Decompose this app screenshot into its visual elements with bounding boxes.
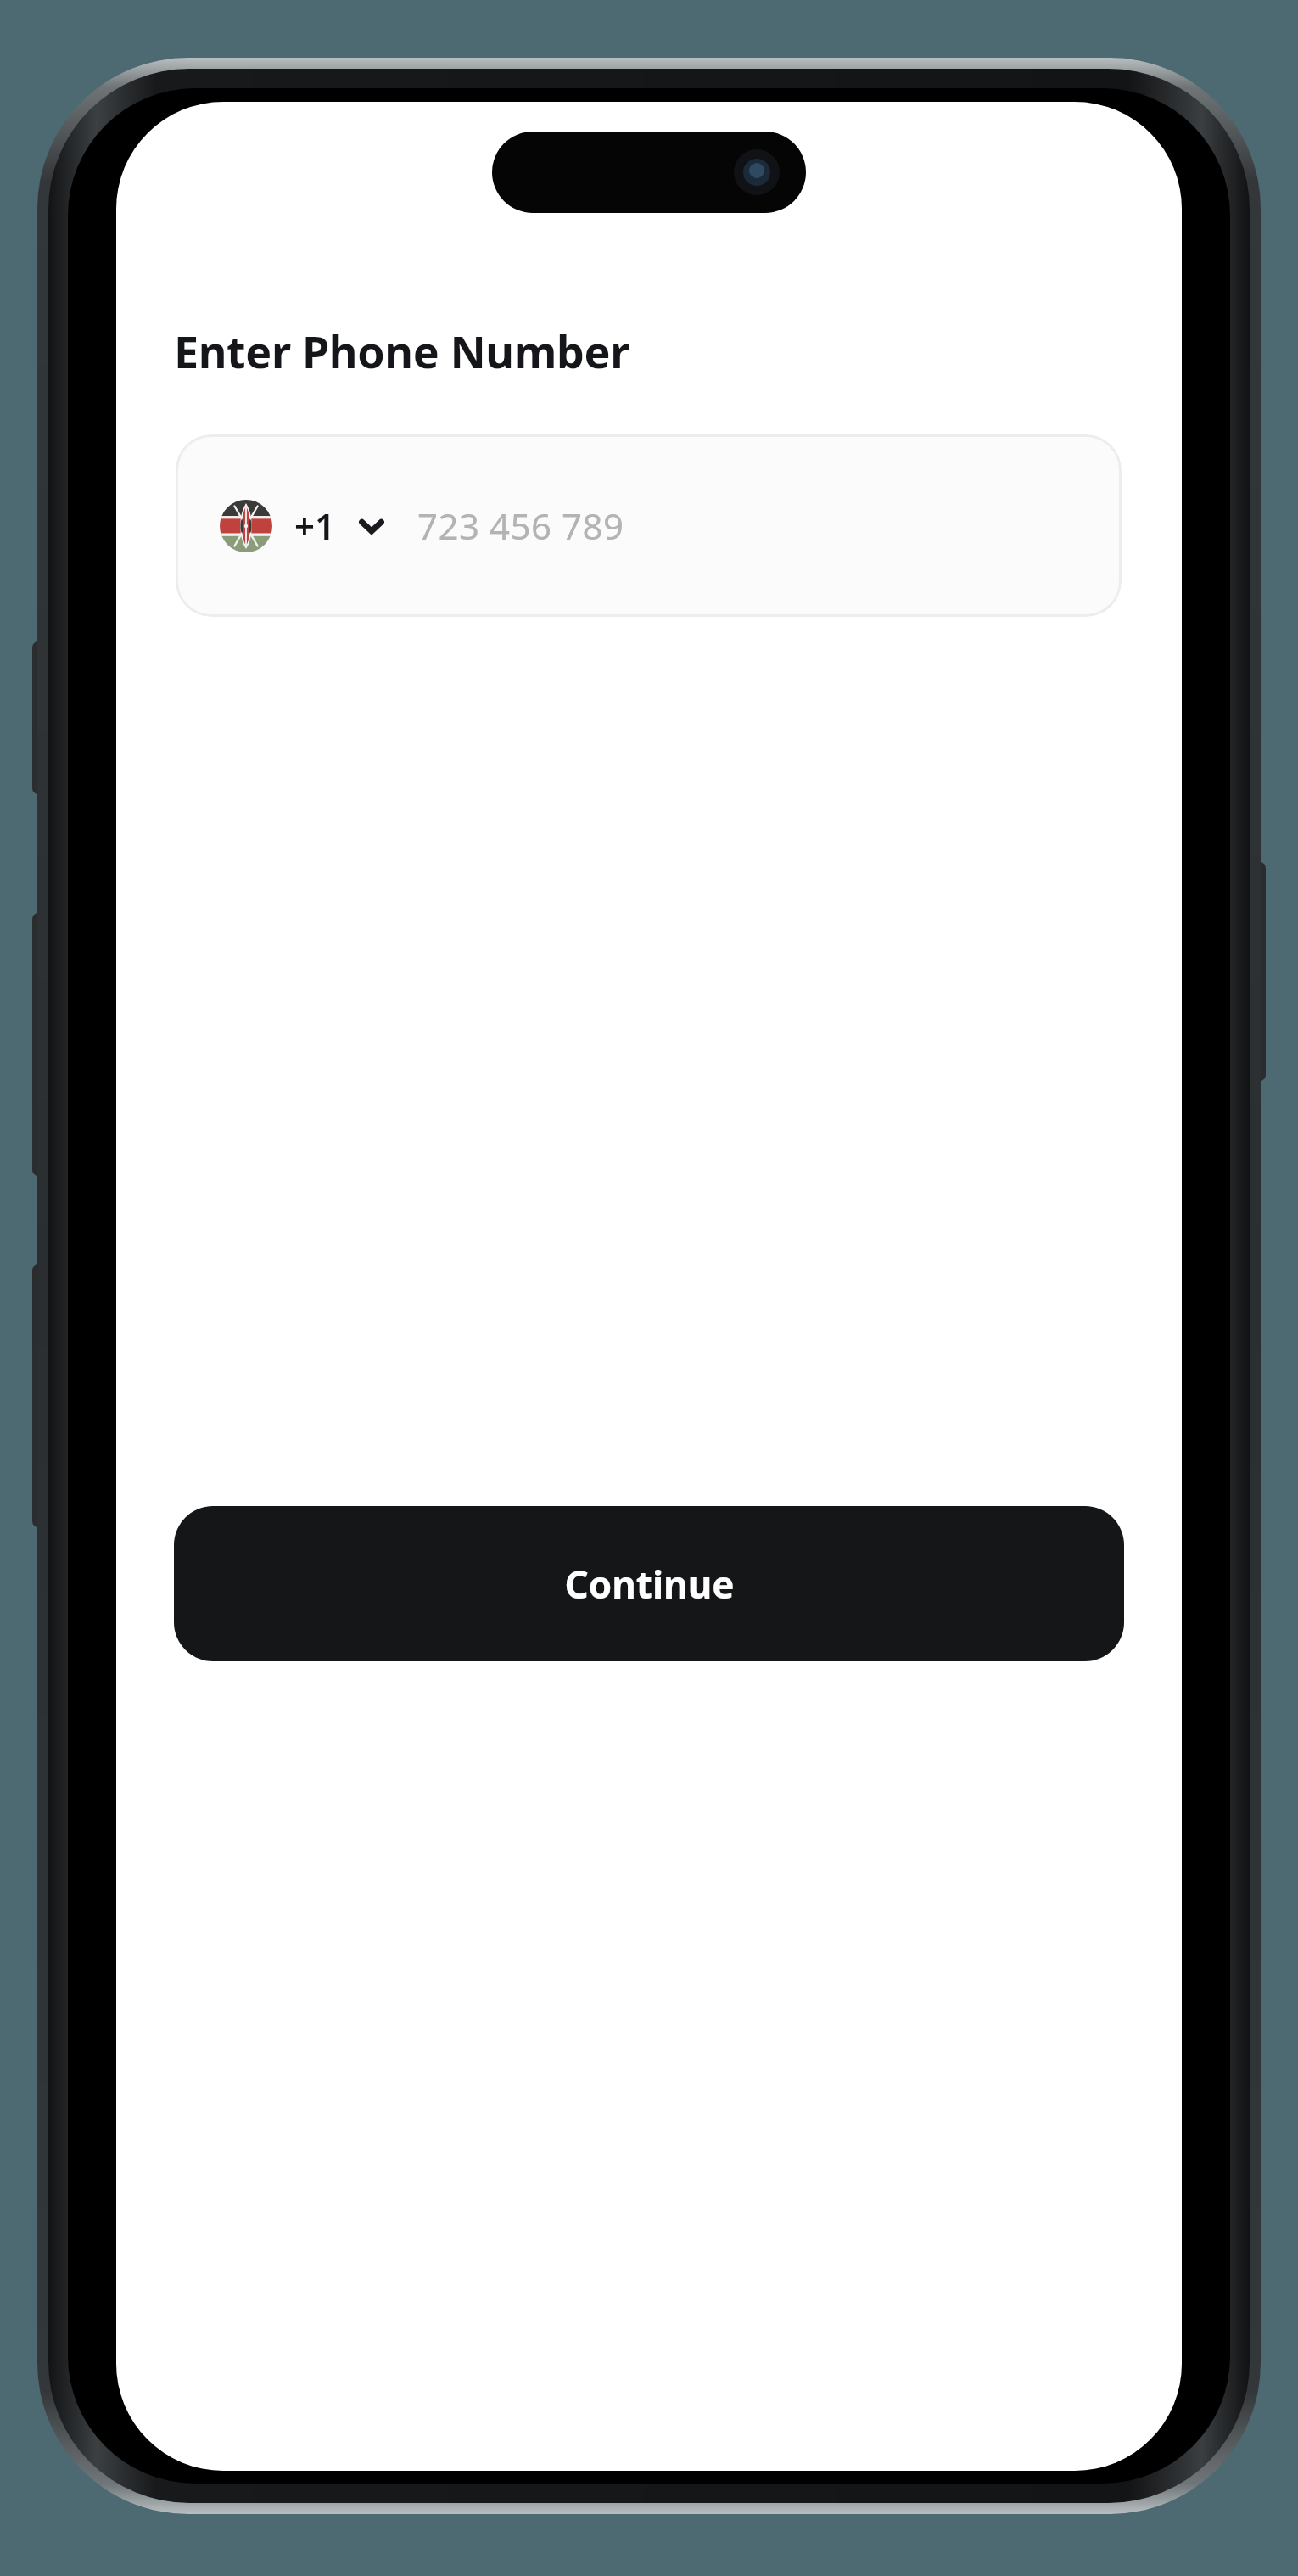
staticText: Enter Phone Number xyxy=(174,321,629,381)
button[interactable]: Continue xyxy=(174,1506,1124,1661)
button[interactable]: +1 xyxy=(176,434,1122,617)
staticText: 723 456 789 xyxy=(417,501,624,550)
staticText: Continue xyxy=(564,1559,735,1610)
button[interactable]: Select country code xyxy=(355,509,389,543)
staticText: +1 xyxy=(294,501,336,550)
